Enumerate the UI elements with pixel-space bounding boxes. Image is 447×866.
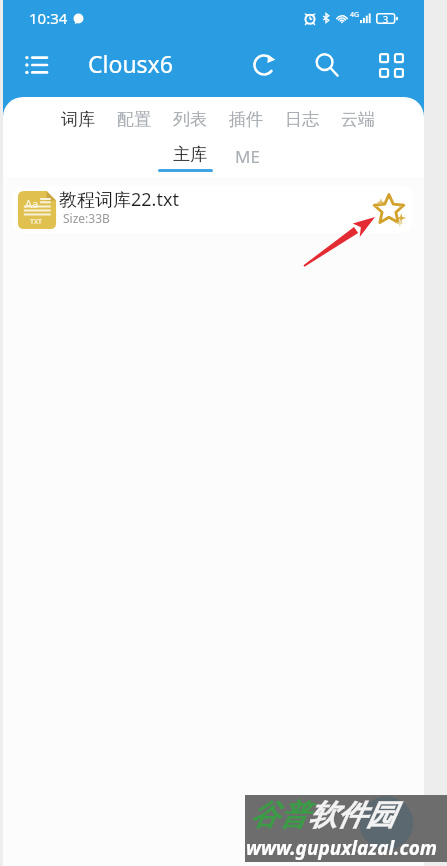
staticText: 软件园 bbox=[308, 797, 395, 834]
staticText: 日志 bbox=[285, 109, 319, 130]
button[interactable]: 配置 bbox=[115, 105, 153, 134]
staticText: Size:33B bbox=[63, 210, 110, 226]
staticText: 10:34 bbox=[29, 8, 68, 28]
staticText: 3 bbox=[383, 13, 389, 24]
button[interactable]: Aa bbox=[13, 186, 412, 233]
staticText: 主库 bbox=[173, 144, 207, 165]
staticText: ME bbox=[235, 145, 260, 168]
button[interactable]: 云端 bbox=[339, 105, 377, 134]
button[interactable]: Search bbox=[304, 42, 350, 88]
staticText: 4G bbox=[350, 10, 360, 20]
staticText: www.gupuxlazal.com bbox=[246, 835, 438, 861]
button[interactable]: 词库 bbox=[59, 105, 97, 134]
staticText: 谷普 bbox=[250, 797, 308, 834]
button[interactable]: Favorite bbox=[368, 188, 412, 232]
button[interactable]: Grid view bbox=[368, 42, 414, 88]
staticText: TXT bbox=[30, 217, 42, 227]
button[interactable]: 日志 bbox=[283, 105, 321, 134]
staticText: Aa bbox=[25, 196, 39, 211]
staticText: 云端 bbox=[341, 109, 375, 130]
button[interactable]: 插件 bbox=[227, 105, 265, 134]
button[interactable]: 主库 bbox=[161, 142, 219, 167]
staticText: 插件 bbox=[229, 109, 263, 130]
button[interactable]: ME bbox=[225, 143, 270, 170]
staticText: 列表 bbox=[173, 109, 207, 130]
staticText: 配置 bbox=[117, 109, 151, 130]
staticText: Clousx6 bbox=[88, 48, 173, 79]
staticText: 词库 bbox=[61, 109, 95, 130]
staticText: 教程词库22.txt bbox=[59, 187, 179, 212]
button[interactable]: Refresh bbox=[241, 42, 287, 88]
button[interactable]: Menu bbox=[14, 43, 57, 86]
button[interactable]: 列表 bbox=[171, 105, 209, 134]
